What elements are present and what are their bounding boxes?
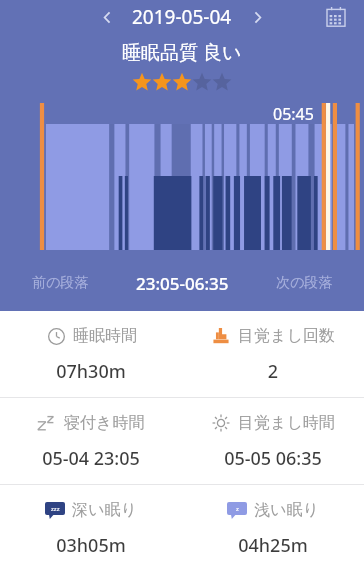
button[interactable]: 前の段落 (0, 255, 120, 311)
staticText: 03h05m (0, 533, 182, 558)
button[interactable]: Next day (242, 2, 272, 32)
button[interactable]: 睡眠時間 (0, 311, 182, 397)
staticText: 05-04 23:05 (0, 446, 182, 471)
button[interactable]: Calendar (320, 1, 352, 33)
staticText: 2 (182, 359, 364, 384)
staticText: 04h25m (182, 533, 364, 558)
staticText: 目覚まし回数 (238, 326, 335, 346)
staticText: 23:05-06:35 (136, 272, 229, 295)
staticText: 寝付き時間 (64, 413, 145, 433)
staticText: 前の段落 (32, 274, 89, 292)
staticText: 2019-05-04 (132, 4, 232, 30)
staticText: z (236, 505, 239, 513)
button[interactable]: 目覚まし回数 (182, 311, 364, 397)
button[interactable]: Previous day (92, 2, 122, 32)
staticText: 05-05 06:35 (182, 446, 364, 471)
button[interactable]: z (182, 485, 364, 570)
staticText: 睡眠時間 (73, 326, 137, 346)
staticText: zzz (51, 505, 60, 513)
button[interactable]: 寝付き時間 (0, 398, 182, 484)
staticText: 目覚まし時間 (238, 413, 335, 433)
staticText: 浅い眠り (254, 500, 319, 520)
staticText: 次の段落 (276, 274, 333, 292)
button[interactable]: 次の段落 (245, 255, 364, 311)
button[interactable]: zzz (0, 485, 182, 570)
staticText: 07h30m (0, 359, 182, 384)
staticText: 睡眠品質 良い (122, 39, 242, 65)
staticText: 深い眠り (72, 500, 137, 520)
button[interactable]: 目覚まし時間 (182, 398, 364, 484)
staticText: 05:45 (273, 103, 314, 125)
